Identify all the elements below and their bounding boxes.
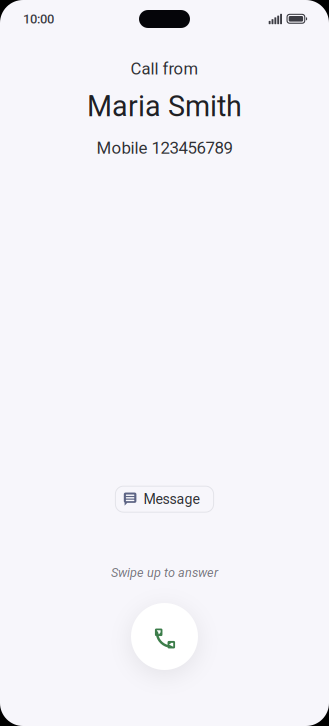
staticText: Maria Smith: [87, 89, 242, 123]
staticText: Message: [144, 491, 200, 507]
button[interactable]: Message: [115, 486, 214, 512]
button[interactable]: Answer call: [131, 603, 198, 670]
staticText: Mobile 123456789: [96, 138, 232, 158]
staticText: 10:00: [23, 11, 54, 27]
staticText: Swipe up to answer: [111, 565, 218, 580]
staticText: Call from: [130, 59, 198, 78]
